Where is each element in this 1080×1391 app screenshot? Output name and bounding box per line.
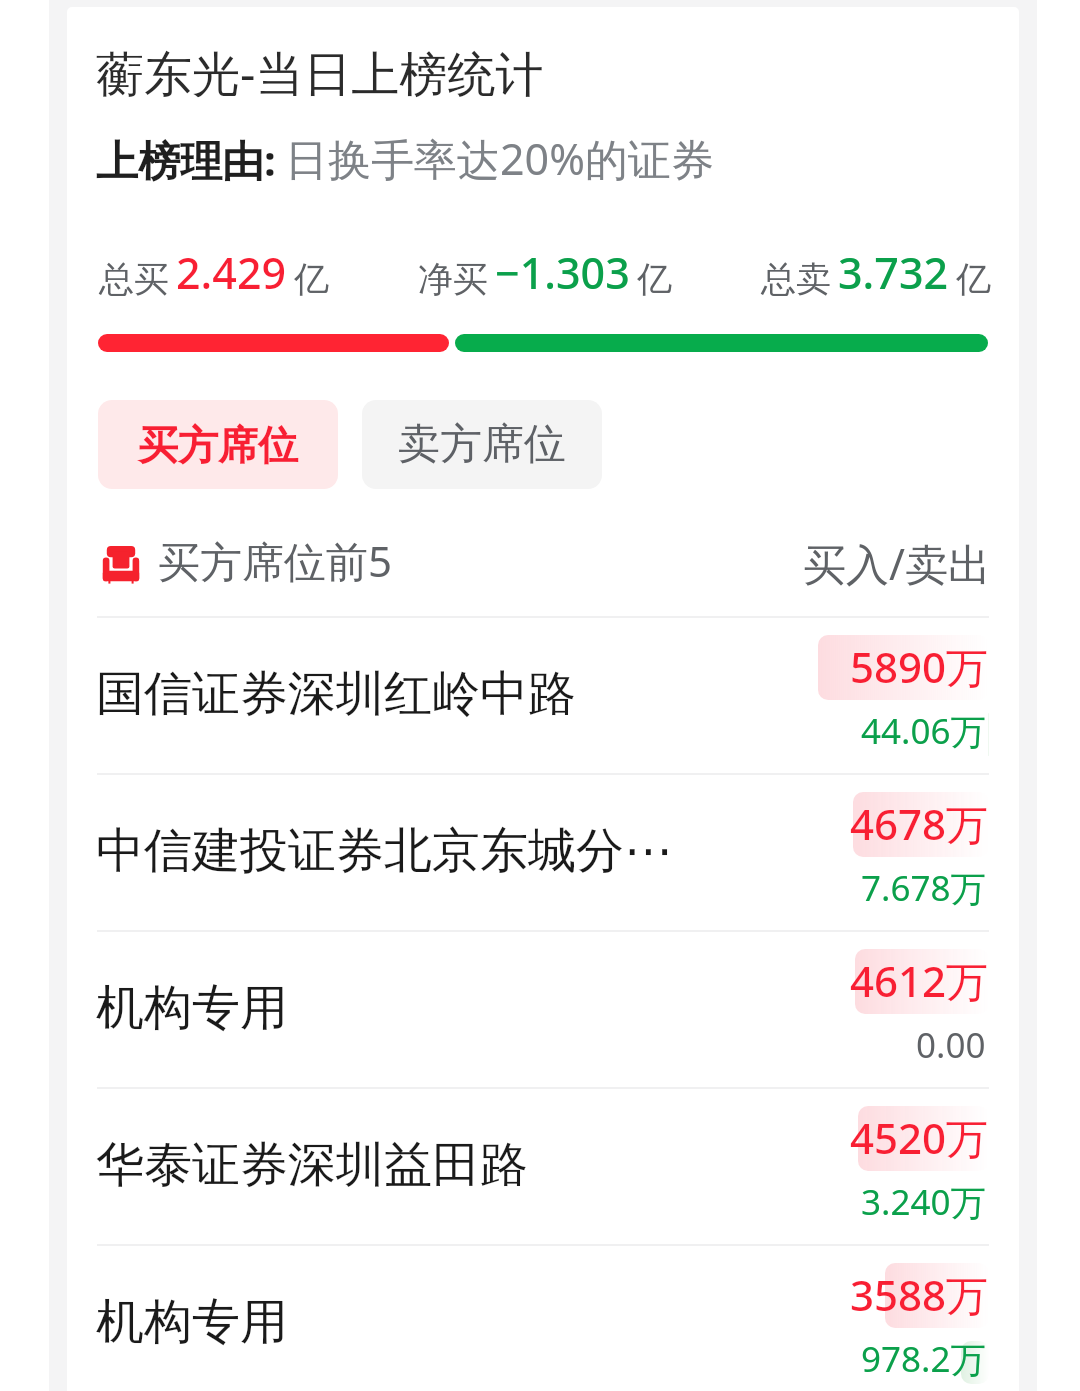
staticText: 亿: [637, 257, 672, 301]
staticText: 上榜理由:: [96, 131, 276, 188]
staticText: 机构专用: [96, 1292, 288, 1352]
staticText: 0.00: [916, 1021, 986, 1069]
button[interactable]: 国信证券深圳红岭中路: [67, 616, 1019, 773]
staticText: 国信证券深圳红岭中路: [96, 664, 576, 724]
button[interactable]: 卖方席位: [362, 400, 602, 489]
staticText: 买方席位前5: [158, 532, 393, 589]
button[interactable]: 机构专用: [67, 1244, 1019, 1391]
staticText: 4678万: [850, 795, 989, 852]
staticText: 卖方席位: [398, 418, 566, 471]
staticText: 总买: [99, 257, 169, 301]
button[interactable]: 机构专用: [67, 930, 1019, 1087]
button[interactable]: 华泰证券深圳益田路: [67, 1087, 1019, 1244]
staticText: 总卖: [761, 257, 831, 301]
staticText: 中信建投证券北京东城分⋯: [96, 821, 672, 881]
staticText: 4612万: [850, 952, 989, 1009]
staticText: 买入/卖出: [803, 534, 991, 593]
staticText: 3.732: [838, 243, 949, 302]
staticText: 亿: [956, 257, 991, 301]
staticText: 4520万: [850, 1109, 989, 1166]
staticText: 华泰证券深圳益田路: [96, 1135, 528, 1195]
staticText: 日换手率达20%的证券: [285, 129, 714, 188]
staticText: 5890万: [850, 638, 989, 695]
staticText: 亿: [294, 257, 329, 301]
staticText: −1.303: [495, 243, 630, 302]
staticText: 机构专用: [96, 978, 288, 1038]
staticText: 净买: [418, 257, 488, 301]
other: 买方席位: [101, 544, 141, 584]
staticText: 978.2万: [861, 1335, 986, 1383]
staticText: 44.06万: [861, 707, 986, 755]
staticText: 2.429: [176, 243, 287, 302]
staticText: 3.240万: [861, 1178, 986, 1226]
staticText: 3588万: [850, 1266, 989, 1323]
button[interactable]: 中信建投证券北京东城分⋯: [67, 773, 1019, 930]
staticText: 7.678万: [861, 864, 986, 912]
staticText: 蘅东光-当日上榜统计: [96, 40, 544, 106]
staticText: 买方席位: [138, 420, 298, 470]
button[interactable]: 买方席位: [98, 400, 338, 489]
